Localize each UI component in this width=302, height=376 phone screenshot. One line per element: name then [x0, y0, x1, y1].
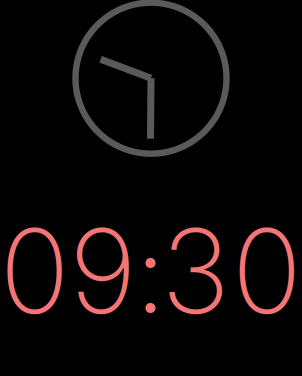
staticText: 9 — [69, 201, 137, 341]
button[interactable]: Clock, 9:30 — [0, 0, 302, 376]
staticText: 3 — [161, 201, 230, 341]
staticText: 0 — [232, 201, 302, 341]
staticText: 0 — [0, 201, 69, 341]
